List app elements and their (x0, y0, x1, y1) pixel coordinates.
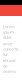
staticText: Lorem ipsum dolor (3, 24, 15, 40)
staticText: amet consectetur (3, 41, 19, 57)
staticText: elit sed do eiusmo (3, 58, 16, 74)
